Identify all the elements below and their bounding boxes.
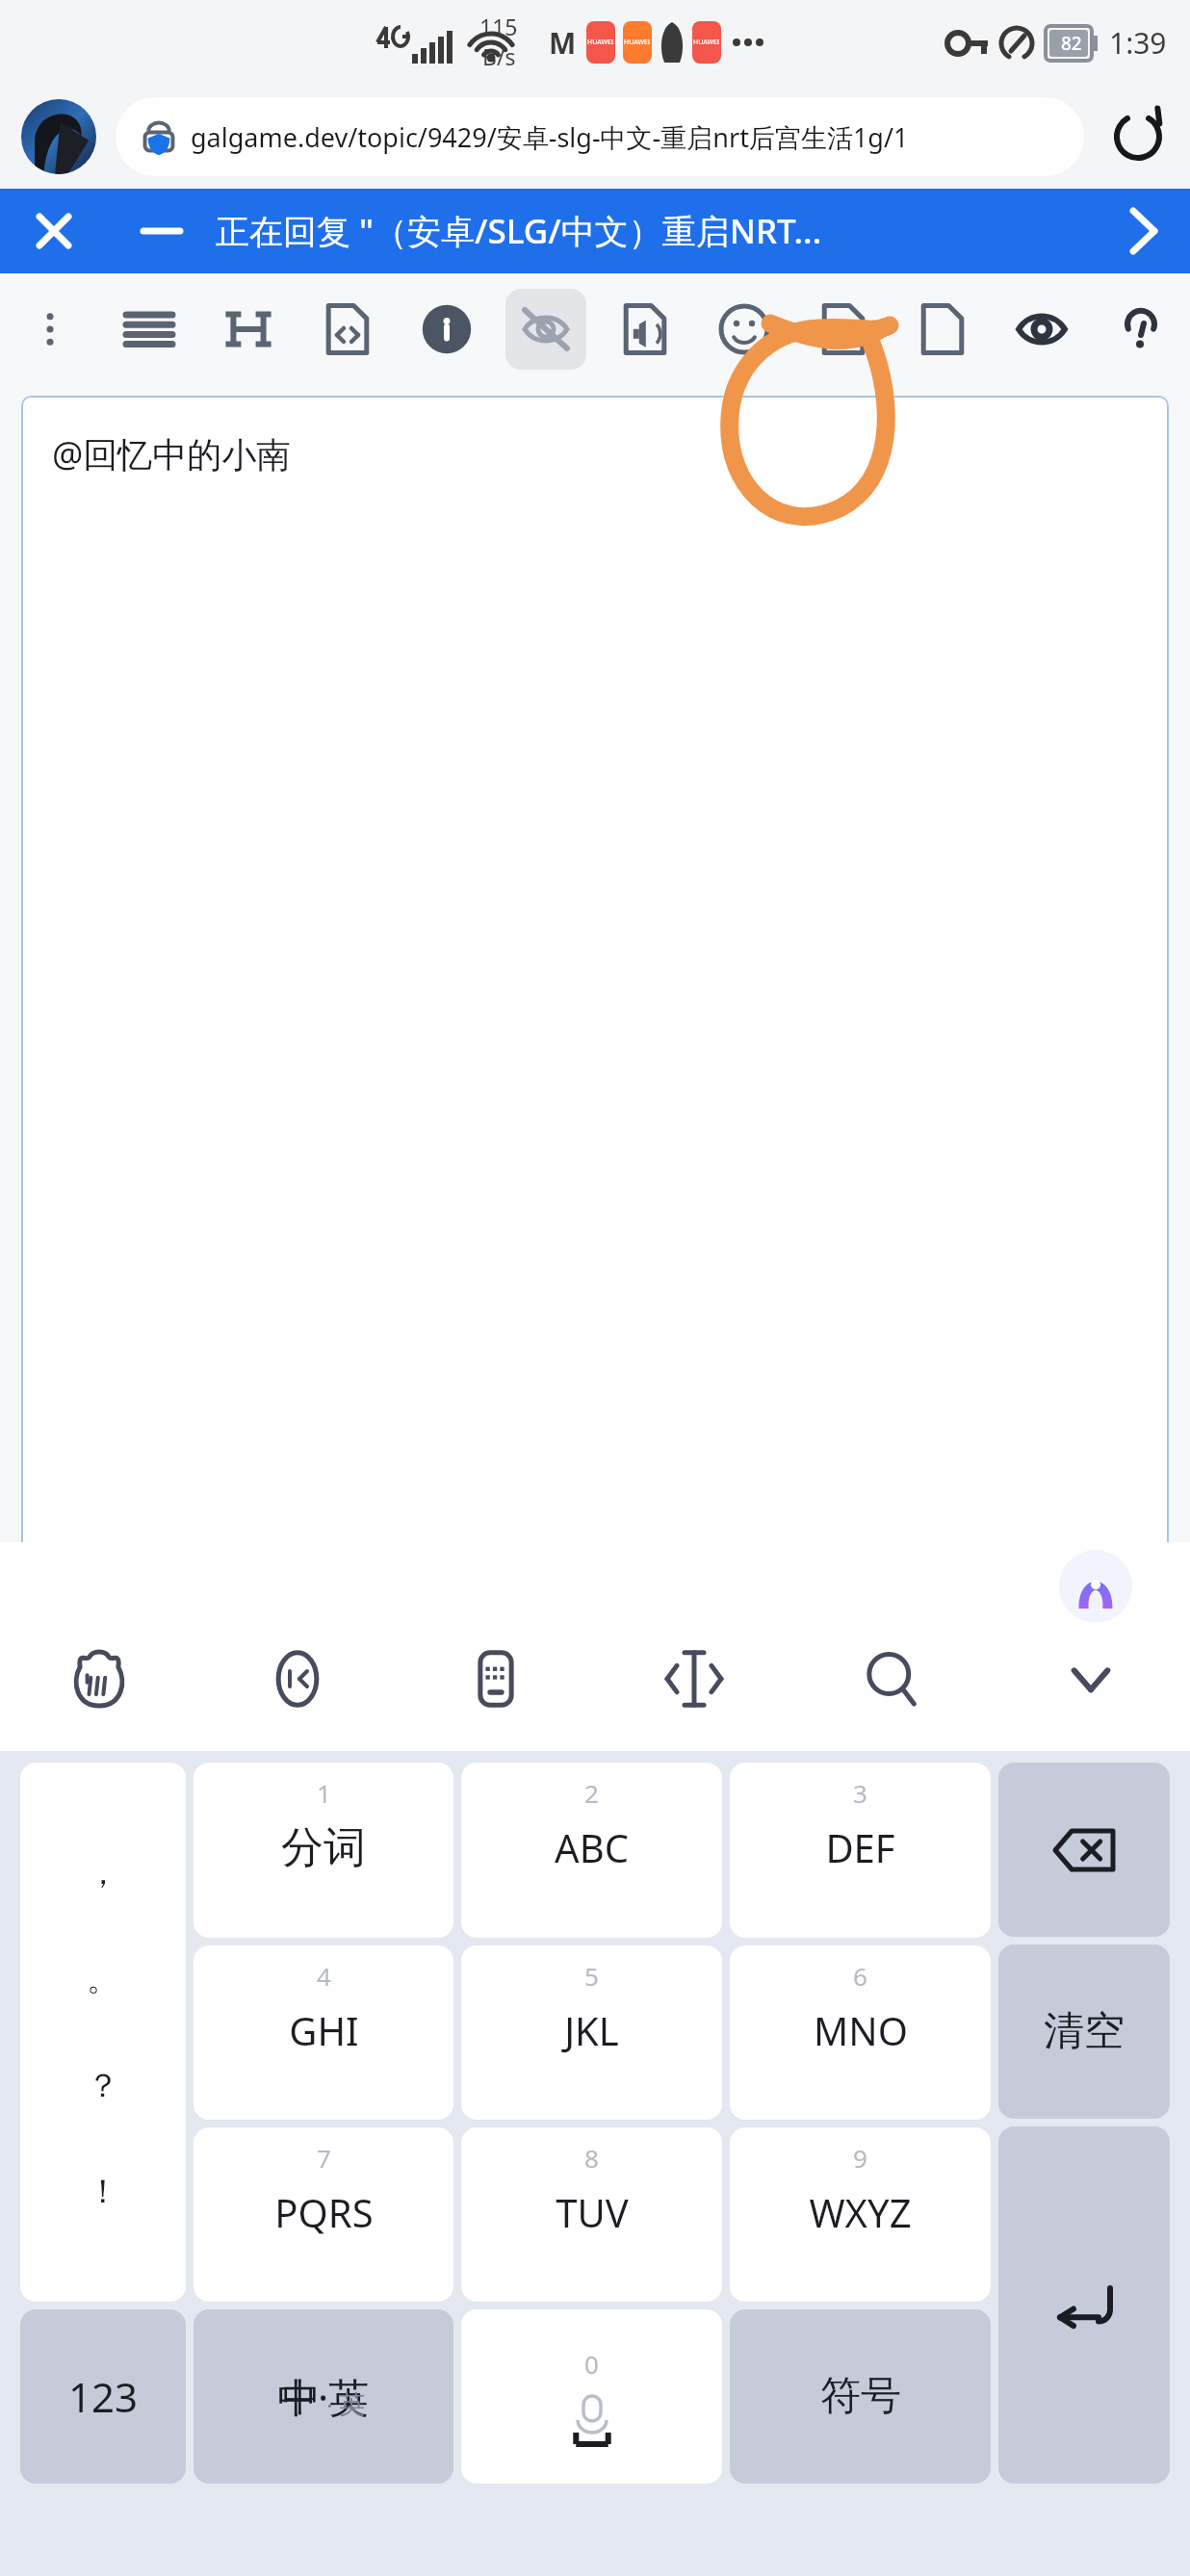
staticText: 4 bbox=[317, 1959, 331, 1993]
button[interactable]: Minimise bbox=[108, 189, 216, 273]
button[interactable]: galgame.dev/topic/9429/安卓-slg-中文-重启nrt后宫… bbox=[116, 97, 1084, 176]
button[interactable]: List bbox=[99, 273, 198, 384]
button[interactable]: Edit cursor bbox=[595, 1607, 793, 1751]
staticText: 6 bbox=[853, 1959, 867, 1993]
staticText: 符号 bbox=[820, 2371, 901, 2422]
button[interactable]: Clipboard bbox=[397, 1607, 595, 1751]
staticText: 中 bbox=[282, 2373, 321, 2421]
staticText: JKL bbox=[564, 2004, 619, 2056]
staticText: PQRS bbox=[274, 2186, 374, 2238]
button[interactable]: Audio bbox=[595, 273, 694, 384]
button[interactable]: ABC bbox=[461, 1763, 722, 1938]
staticText: 82 bbox=[1061, 31, 1082, 56]
button[interactable]: TUV bbox=[461, 2127, 722, 2302]
staticText: 英 bbox=[339, 2388, 365, 2421]
staticText: TUV bbox=[556, 2186, 629, 2238]
staticText: 0 bbox=[584, 2347, 599, 2381]
button[interactable]: Image bbox=[793, 273, 892, 384]
staticText: 清空 bbox=[1044, 2006, 1125, 2057]
staticText: ？ bbox=[87, 2065, 119, 2106]
staticText: 7 bbox=[317, 2141, 331, 2175]
button[interactable]: GHI bbox=[194, 1945, 453, 2120]
button[interactable]: Emoticon bbox=[198, 1607, 397, 1751]
staticText: 正在回复 "（安卓/SLG/中文）重启NRT... bbox=[216, 208, 1098, 254]
button[interactable]: Info bbox=[397, 273, 496, 384]
button[interactable]: JKL bbox=[461, 1945, 722, 2120]
staticText: 9 bbox=[853, 2141, 867, 2175]
staticText: HUAWEI bbox=[693, 38, 720, 47]
button[interactable]: Input method bbox=[0, 1607, 198, 1751]
staticText: 3 bbox=[853, 1776, 867, 1810]
staticText: 中·英 bbox=[277, 2369, 370, 2424]
button[interactable]: Enter bbox=[998, 2126, 1170, 2484]
button[interactable]: Help bbox=[1091, 273, 1190, 384]
button[interactable]: 123 bbox=[20, 2309, 186, 2484]
button[interactable]: 中·英 bbox=[194, 2309, 453, 2484]
button[interactable]: Backspace bbox=[998, 1763, 1170, 1937]
button[interactable]: 分词 bbox=[194, 1763, 453, 1938]
button[interactable]: MNO bbox=[730, 1945, 991, 2120]
button[interactable]: DEF bbox=[730, 1763, 991, 1938]
staticText: 123 bbox=[68, 2369, 139, 2424]
button[interactable]: Hide keyboard bbox=[992, 1607, 1190, 1751]
staticText: 分词 bbox=[281, 1821, 366, 1874]
staticText: 8 bbox=[584, 2141, 599, 2175]
button[interactable]: File bbox=[892, 273, 992, 384]
staticText: GHI bbox=[289, 2004, 359, 2056]
button[interactable]: 符号 bbox=[730, 2309, 991, 2484]
staticText: HUAWEI bbox=[587, 38, 614, 47]
button[interactable]: Punctuation bbox=[20, 1763, 186, 2302]
button[interactable]: Space bbox=[461, 2309, 722, 2484]
staticText: 1:39 bbox=[1109, 23, 1167, 63]
button[interactable]: Preview bbox=[992, 273, 1091, 384]
staticText: ABC bbox=[555, 1821, 629, 1873]
staticText: 2 bbox=[584, 1776, 599, 1810]
staticText: ！ bbox=[87, 2171, 119, 2212]
button[interactable]: AI assistant bbox=[1059, 1550, 1132, 1623]
staticText: B/s bbox=[482, 41, 516, 71]
button[interactable]: Hide bbox=[496, 273, 595, 384]
staticText: · bbox=[321, 2389, 339, 2421]
button[interactable]: Reload bbox=[1101, 100, 1175, 173]
button[interactable]: @回忆中的小南 bbox=[21, 396, 1169, 2576]
button[interactable]: Code block bbox=[297, 273, 397, 384]
button[interactable]: Heading bbox=[198, 273, 297, 384]
button[interactable]: Emoji bbox=[694, 273, 793, 384]
staticText: MNO bbox=[814, 2004, 908, 2056]
button[interactable]: PQRS bbox=[194, 2127, 453, 2302]
button[interactable]: Close bbox=[0, 189, 108, 273]
staticText: 。 bbox=[87, 1958, 119, 1999]
staticText: @回忆中的小南 bbox=[52, 430, 292, 477]
staticText: 1 bbox=[317, 1776, 331, 1810]
button[interactable]: More bbox=[0, 273, 99, 384]
staticText: M bbox=[549, 23, 577, 63]
staticText: HUAWEI bbox=[624, 38, 651, 47]
staticText: galgame.dev/topic/9429/安卓-slg-中文-重启nrt后宫… bbox=[191, 119, 909, 155]
button[interactable]: Profile bbox=[21, 99, 96, 174]
button[interactable]: WXYZ bbox=[730, 2127, 991, 2302]
staticText: 5 bbox=[584, 1959, 599, 1993]
button[interactable]: Search bbox=[793, 1607, 992, 1751]
staticText: 115 bbox=[479, 12, 518, 41]
staticText: ， bbox=[87, 1852, 119, 1893]
staticText: DEF bbox=[825, 1821, 895, 1873]
button[interactable]: 清空 bbox=[998, 1945, 1170, 2119]
button[interactable]: Expand bbox=[1098, 189, 1190, 273]
staticText: WXYZ bbox=[809, 2186, 912, 2238]
